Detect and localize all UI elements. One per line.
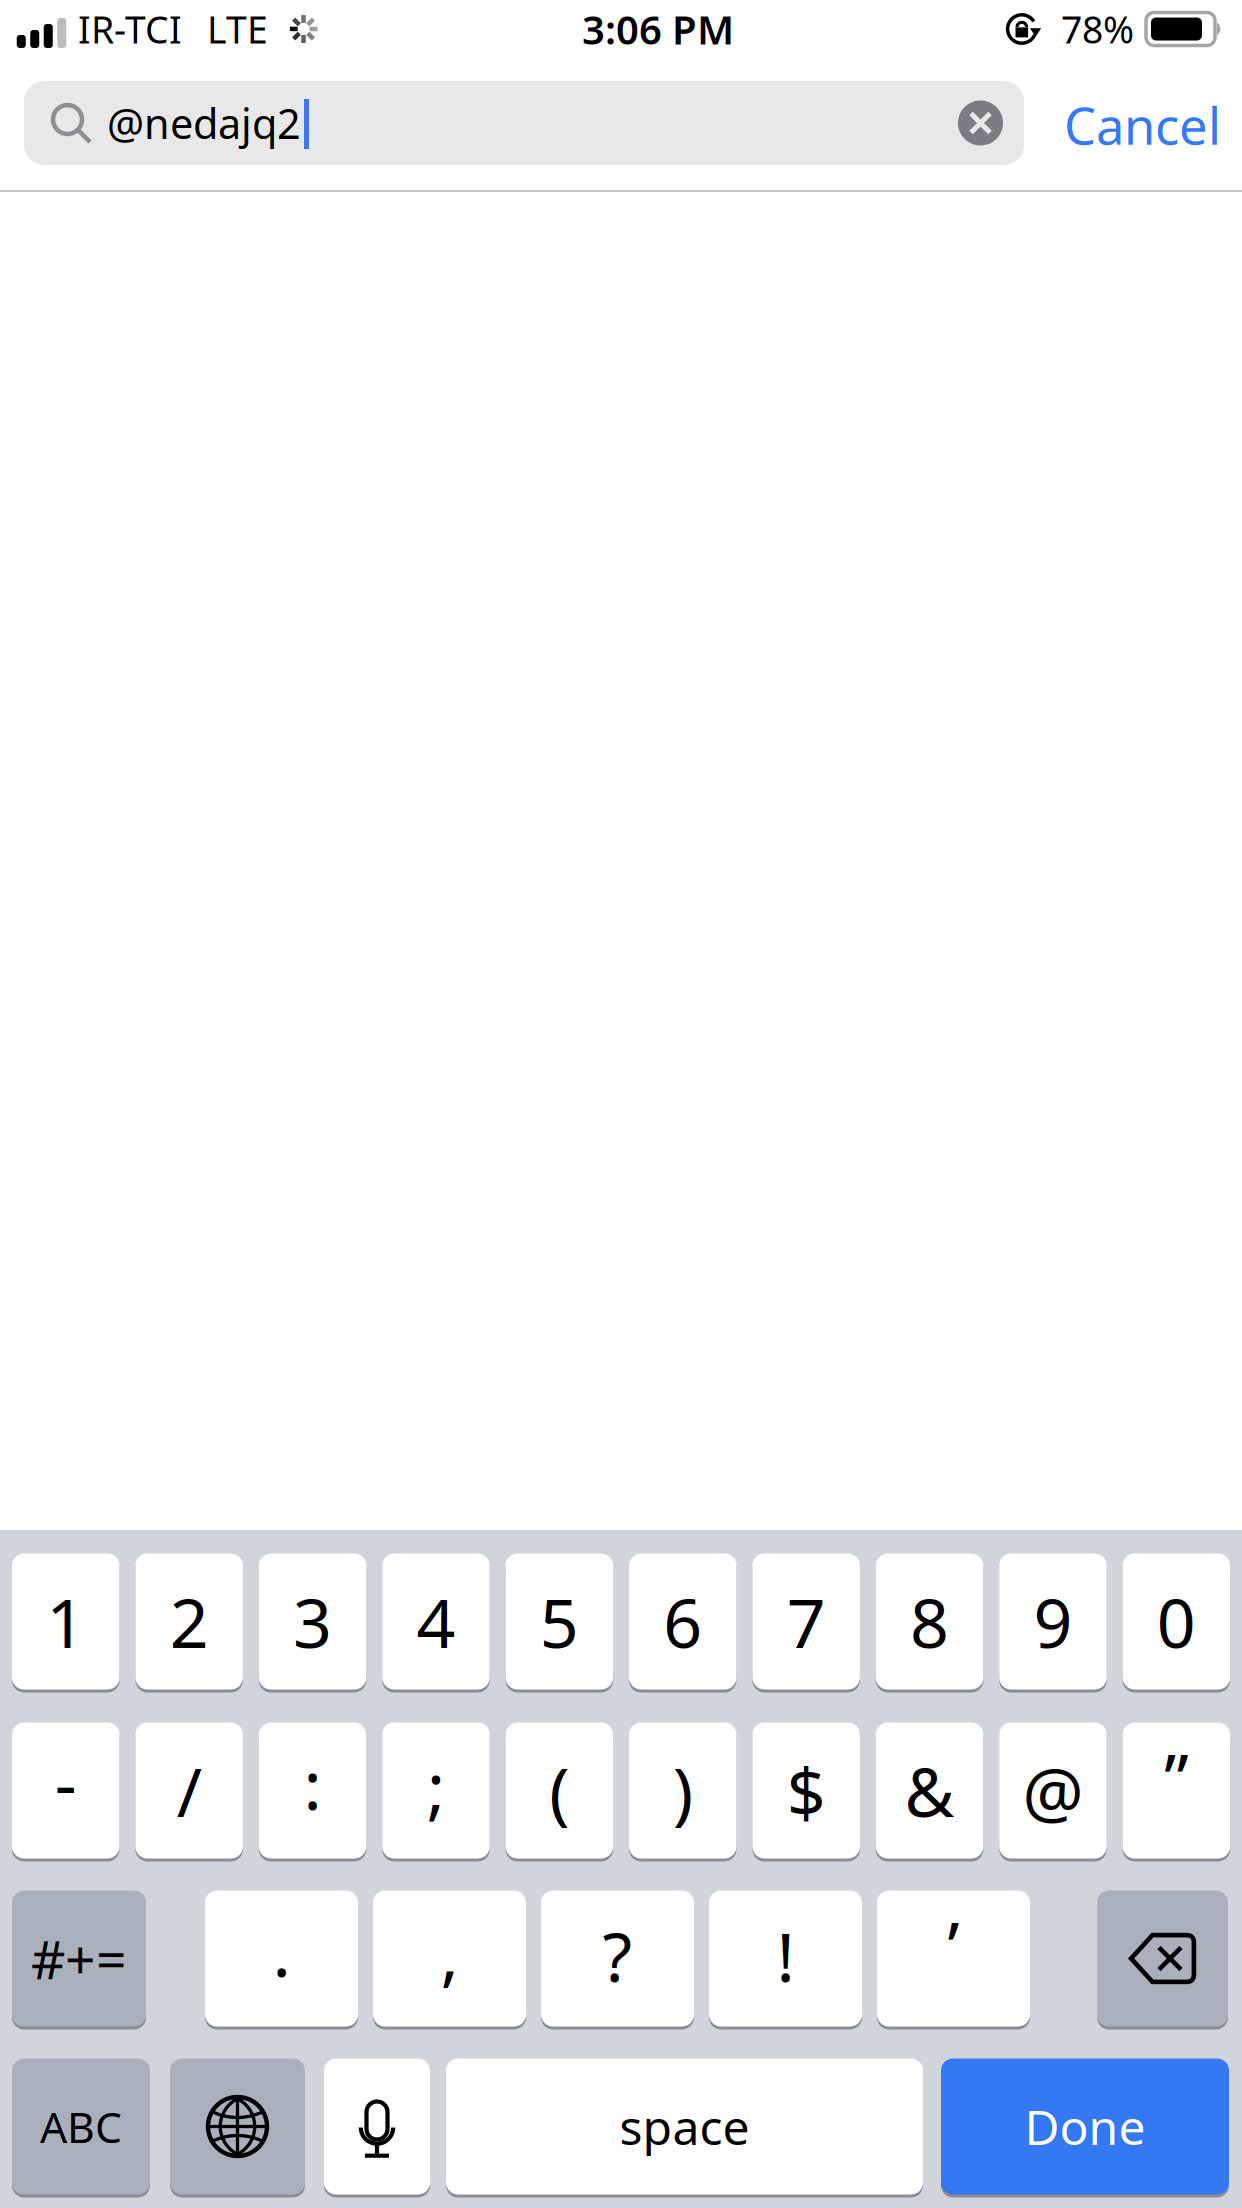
button[interactable]: 0 bbox=[1123, 1552, 1230, 1691]
staticText: ABC bbox=[40, 2098, 122, 2155]
staticText: 8 bbox=[910, 1576, 949, 1667]
button[interactable]: Cancel bbox=[1024, 81, 1242, 165]
staticText: & bbox=[904, 1745, 954, 1836]
staticText: 78% bbox=[1061, 4, 1134, 54]
button[interactable]: , bbox=[373, 1889, 526, 2028]
button[interactable]: 4 bbox=[382, 1552, 490, 1691]
staticText: : bbox=[304, 1738, 322, 1829]
staticText: 4 bbox=[416, 1576, 455, 1667]
staticText: , bbox=[440, 1907, 458, 1998]
staticText: ? bbox=[602, 1910, 632, 2001]
button[interactable]: ; bbox=[382, 1721, 490, 1860]
staticText: ; bbox=[427, 1740, 445, 1831]
staticText: - bbox=[55, 1737, 77, 1828]
staticText: ) bbox=[673, 1745, 693, 1836]
button[interactable]: 5 bbox=[506, 1552, 613, 1691]
button[interactable]: ! bbox=[709, 1889, 862, 2028]
button[interactable]: ” bbox=[1123, 1721, 1230, 1860]
staticText: 5 bbox=[540, 1576, 579, 1667]
staticText: IR-TCI bbox=[78, 4, 182, 54]
button[interactable]: / bbox=[135, 1721, 243, 1860]
button[interactable]: Done bbox=[941, 2057, 1229, 2196]
button[interactable]: 9 bbox=[999, 1552, 1107, 1691]
button[interactable]: ABC bbox=[12, 2057, 150, 2196]
button[interactable]: ( bbox=[506, 1721, 613, 1860]
staticText: Done bbox=[1024, 2095, 1145, 2158]
button[interactable]: Delete bbox=[1097, 1889, 1228, 2028]
staticText: @ bbox=[1022, 1745, 1083, 1836]
staticText: ’ bbox=[947, 1899, 959, 1990]
staticText: 6 bbox=[663, 1576, 702, 1667]
button[interactable]: : bbox=[259, 1721, 366, 1860]
button[interactable]: Dictation bbox=[324, 2057, 430, 2196]
staticText: $ bbox=[787, 1745, 826, 1836]
staticText: LTE bbox=[207, 4, 268, 54]
staticText: 2 bbox=[170, 1576, 209, 1667]
button[interactable]: - bbox=[12, 1721, 119, 1860]
staticText: / bbox=[177, 1745, 202, 1836]
staticText: 3 bbox=[293, 1576, 332, 1667]
staticText: #+= bbox=[31, 1923, 127, 1994]
staticText: ” bbox=[1164, 1731, 1188, 1822]
staticText: Cancel bbox=[1064, 91, 1221, 159]
staticText: 7 bbox=[787, 1576, 826, 1667]
staticText: 0 bbox=[1157, 1576, 1196, 1667]
button[interactable]: & bbox=[876, 1721, 983, 1860]
staticText: ! bbox=[776, 1910, 794, 2001]
button[interactable]: 1 bbox=[12, 1552, 119, 1691]
button[interactable]: 3 bbox=[259, 1552, 366, 1691]
staticText: . bbox=[272, 1905, 290, 1996]
staticText: @nedajq2 bbox=[107, 96, 301, 150]
button[interactable]: 7 bbox=[752, 1552, 860, 1691]
staticText: space bbox=[619, 2095, 749, 2158]
button[interactable]: 8 bbox=[876, 1552, 983, 1691]
button[interactable]: space bbox=[446, 2057, 923, 2196]
button[interactable]: 6 bbox=[629, 1552, 736, 1691]
button[interactable]: ? bbox=[541, 1889, 694, 2028]
staticText: 1 bbox=[46, 1576, 85, 1667]
button[interactable]: @nedajq2 bbox=[24, 81, 1024, 165]
button[interactable]: ’ bbox=[877, 1889, 1030, 2028]
staticText: ( bbox=[549, 1745, 569, 1836]
button[interactable]: ) bbox=[629, 1721, 736, 1860]
button[interactable]: 2 bbox=[135, 1552, 243, 1691]
button[interactable]: . bbox=[205, 1889, 358, 2028]
button[interactable]: Next keyboard bbox=[170, 2057, 305, 2196]
staticText: 9 bbox=[1033, 1576, 1072, 1667]
button[interactable]: #+= bbox=[12, 1889, 146, 2028]
button[interactable]: @ bbox=[999, 1721, 1107, 1860]
button[interactable]: $ bbox=[752, 1721, 860, 1860]
staticText: 3:06 PM bbox=[582, 2, 734, 55]
